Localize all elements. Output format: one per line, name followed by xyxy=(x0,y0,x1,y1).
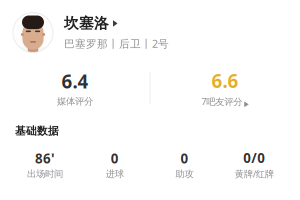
staticText: 0 xyxy=(180,149,188,167)
staticText: 6.4 xyxy=(61,69,88,94)
staticText: 0 xyxy=(111,149,119,167)
staticText: 进球 xyxy=(106,168,124,180)
button[interactable]: 坎塞洛 xyxy=(0,6,300,58)
staticText: 巴塞罗那丨后卫丨2号 xyxy=(64,36,169,51)
staticText: 6.6 xyxy=(211,68,238,93)
staticText: 出场时间 xyxy=(27,168,63,180)
button[interactable]: 6.6 xyxy=(150,68,300,108)
staticText: 坎塞洛 xyxy=(64,14,109,32)
staticText: 媒体评分 xyxy=(57,96,93,107)
staticText: 基础数据 xyxy=(15,124,59,137)
staticText: 7吧友评分 xyxy=(201,95,242,108)
staticText: 86' xyxy=(35,149,55,167)
staticText: 助攻 xyxy=(175,168,193,180)
staticText: 0/0 xyxy=(243,149,265,167)
staticText: 黄牌/红牌 xyxy=(235,168,274,180)
